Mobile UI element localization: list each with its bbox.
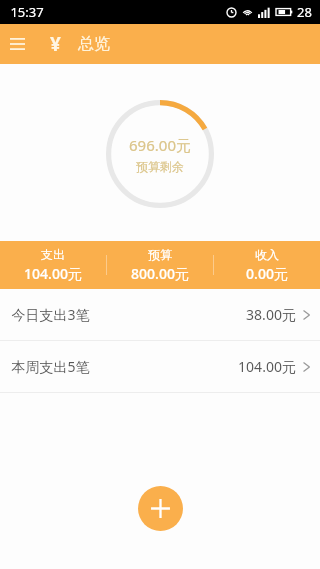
staticText: 收入 bbox=[255, 247, 279, 262]
button[interactable]: Menu bbox=[0, 27, 34, 61]
staticText: 104.00元 bbox=[24, 264, 82, 283]
staticText: 预算剩余 bbox=[136, 159, 184, 174]
button[interactable]: 支出 bbox=[0, 247, 106, 283]
staticText: 本周支出5笔 bbox=[11, 357, 90, 376]
staticText: 28 bbox=[297, 3, 312, 21]
button[interactable]: Add record bbox=[138, 486, 183, 531]
button[interactable]: 今日支出3笔 bbox=[0, 289, 320, 340]
staticText: 696.00元 bbox=[129, 135, 191, 155]
staticText: ¥ bbox=[50, 31, 61, 57]
button[interactable]: 收入 bbox=[214, 247, 320, 283]
button[interactable]: 本周支出5笔 bbox=[0, 341, 320, 392]
staticText: 预算 bbox=[148, 247, 172, 262]
button[interactable]: Currency bbox=[42, 27, 68, 61]
button[interactable]: 696.00元 bbox=[106, 100, 214, 208]
staticText: 104.00元 bbox=[238, 357, 296, 376]
staticText: 800.00元 bbox=[131, 264, 189, 283]
button[interactable]: 预算 bbox=[107, 247, 213, 283]
staticText: 38.00元 bbox=[246, 305, 296, 324]
staticText: 15:37 bbox=[10, 3, 44, 21]
staticText: 总览 bbox=[78, 34, 110, 54]
staticText: 今日支出3笔 bbox=[11, 305, 90, 324]
staticText: 支出 bbox=[41, 247, 65, 262]
staticText: 0.00元 bbox=[246, 264, 288, 283]
